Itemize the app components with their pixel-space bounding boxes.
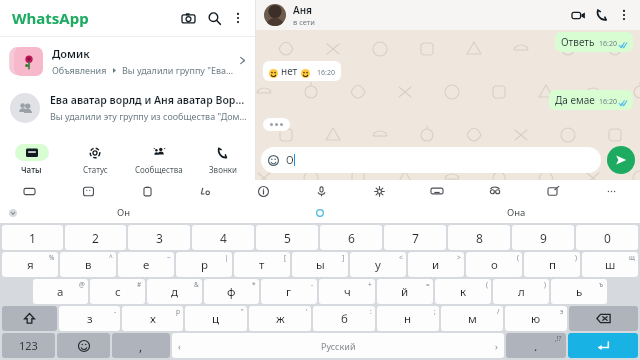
- staticText: р: [201, 257, 208, 273]
- button[interactable]: ж: [249, 306, 311, 331]
- button[interactable]: Clipboard: [118, 180, 176, 202]
- staticText: к: [460, 284, 467, 300]
- button[interactable]: п: [524, 252, 580, 277]
- button[interactable]: к: [435, 279, 491, 304]
- button[interactable]: Ева аватар ворлд и Аня аватар Вор…: [0, 84, 255, 131]
- button[interactable]: 2: [65, 225, 126, 250]
- button[interactable]: Comma: [112, 333, 170, 358]
- staticText: WhatsApp: [12, 8, 89, 28]
- staticText: 4: [220, 230, 227, 246]
- button[interactable]: р: [176, 252, 232, 277]
- staticText: =: [426, 280, 430, 289]
- button[interactable]: у: [350, 252, 406, 277]
- staticText: м: [468, 311, 477, 327]
- staticText: ж: [276, 311, 285, 327]
- button[interactable]: Expand: [0, 202, 26, 223]
- button[interactable]: ‹: [172, 333, 504, 358]
- button[interactable]: Settings: [350, 180, 408, 202]
- button[interactable]: Camera: [175, 5, 201, 31]
- button[interactable]: я: [2, 252, 58, 277]
- staticText: [: [284, 253, 287, 262]
- button[interactable]: в: [60, 252, 116, 277]
- button[interactable]: О: [261, 147, 601, 173]
- staticText: -: [114, 307, 117, 316]
- button[interactable]: Translate: [176, 180, 234, 202]
- button[interactable]: Backspace: [569, 306, 638, 331]
- button[interactable]: Resize: [524, 180, 582, 202]
- staticText: 123: [19, 338, 38, 353]
- button[interactable]: Stickers: [59, 180, 118, 202]
- button[interactable]: Он: [26, 202, 222, 223]
- button[interactable]: More options: [614, 5, 634, 25]
- button[interactable]: 8: [448, 225, 510, 250]
- button[interactable]: Info: [234, 180, 292, 202]
- button[interactable]: Она: [418, 202, 614, 223]
- button[interactable]: 1: [2, 225, 63, 250]
- button[interactable]: Mic: [292, 180, 350, 202]
- button[interactable]: Keyboard: [408, 180, 466, 202]
- button[interactable]: е: [118, 252, 174, 277]
- staticText: 3: [156, 230, 163, 246]
- button[interactable]: Video call: [566, 3, 590, 27]
- staticText: и: [432, 257, 440, 273]
- button[interactable]: ш: [582, 252, 638, 277]
- button[interactable]: м: [441, 306, 503, 331]
- button[interactable]: 0: [576, 225, 638, 250]
- button[interactable]: Send: [607, 146, 635, 174]
- button[interactable]: 4: [192, 225, 254, 250]
- button[interactable]: г: [261, 279, 317, 304]
- staticText: в: [85, 257, 92, 273]
- button[interactable]: ь: [551, 279, 607, 304]
- staticText: (: [517, 253, 519, 262]
- staticText: Чаты: [21, 164, 42, 175]
- button[interactable]: н: [377, 306, 439, 331]
- button[interactable]: Чаты: [0, 138, 63, 180]
- button[interactable]: х: [122, 306, 183, 331]
- button[interactable]: с: [90, 279, 145, 304]
- button[interactable]: ы: [292, 252, 348, 277]
- button[interactable]: Voice call: [590, 3, 614, 27]
- button[interactable]: й: [377, 279, 433, 304]
- button[interactable]: Numbers: [2, 333, 55, 358]
- button[interactable]: л: [493, 279, 549, 304]
- button[interactable]: ч: [319, 279, 375, 304]
- button[interactable]: а: [33, 279, 88, 304]
- button[interactable]: Домик: [0, 37, 255, 84]
- button[interactable]: б: [313, 306, 375, 331]
- staticText: Домик: [52, 46, 90, 61]
- button[interactable]: 3: [128, 225, 190, 250]
- button[interactable]: [222, 202, 418, 223]
- button[interactable]: Shift: [2, 306, 57, 331]
- button[interactable]: т: [234, 252, 290, 277]
- staticText: Аня: [293, 3, 313, 17]
- button[interactable]: .: [506, 333, 566, 358]
- button[interactable]: 7: [384, 225, 446, 250]
- button[interactable]: ц: [185, 306, 247, 331]
- staticText: 2: [92, 230, 99, 246]
- button[interactable]: More: [582, 180, 640, 202]
- button[interactable]: и: [408, 252, 464, 277]
- button[interactable]: More options: [227, 7, 249, 29]
- staticText: ,: [139, 338, 143, 354]
- button[interactable]: Звонки: [191, 138, 255, 180]
- staticText: Звонки: [209, 164, 238, 175]
- button[interactable]: 5: [256, 225, 318, 250]
- button[interactable]: Сообщества: [127, 138, 191, 180]
- button[interactable]: 6: [320, 225, 382, 250]
- button[interactable]: Статус: [63, 138, 127, 180]
- staticText: Да емае: [555, 93, 595, 107]
- button[interactable]: Emoji: [57, 333, 110, 358]
- button[interactable]: ф: [204, 279, 259, 304]
- button[interactable]: о: [466, 252, 522, 277]
- staticText: г: [286, 284, 292, 300]
- button[interactable]: Incognito: [466, 180, 524, 202]
- button[interactable]: ю: [505, 306, 567, 331]
- button[interactable]: Enter: [568, 333, 638, 358]
- button[interactable]: 9: [512, 225, 574, 250]
- staticText: ф: [227, 284, 236, 300]
- button[interactable]: Search: [201, 5, 227, 31]
- staticText: Ответь: [561, 35, 595, 49]
- button[interactable]: GIF: [0, 180, 59, 202]
- button[interactable]: з: [59, 306, 120, 331]
- button[interactable]: д: [147, 279, 202, 304]
